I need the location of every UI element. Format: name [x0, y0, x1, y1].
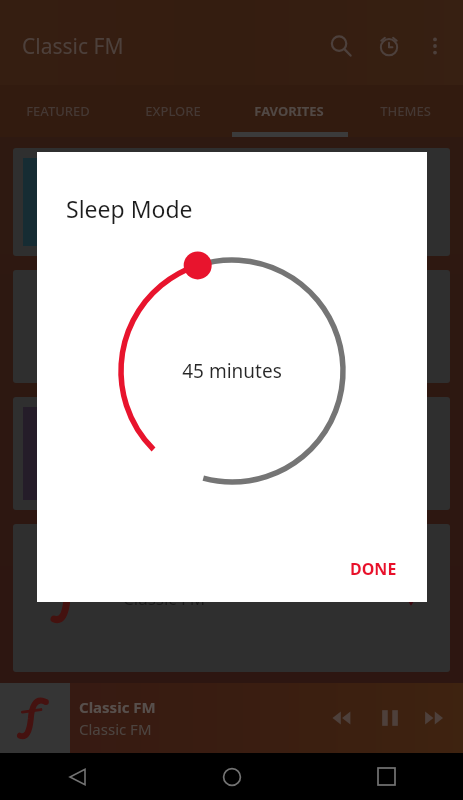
staticText: Classic FM	[22, 32, 124, 61]
button[interactable]: Pause	[367, 695, 413, 741]
staticText: EXPLORE	[145, 102, 201, 120]
staticText: 45 minutes	[182, 358, 282, 384]
button[interactable]: Next	[413, 695, 459, 741]
staticText: Sleep Mode	[66, 193, 193, 224]
button[interactable]: Recents	[309, 753, 463, 800]
staticText: FAVORITES	[254, 102, 324, 120]
staticText: DONE	[350, 558, 397, 580]
button[interactable]	[13, 270, 450, 383]
button[interactable]: EXPLORE	[115, 85, 231, 137]
button[interactable]: Search	[317, 22, 365, 70]
staticText: Classic FM	[123, 587, 206, 610]
staticText: Classic FM	[79, 697, 156, 717]
staticText: FEATURED	[26, 102, 90, 120]
button[interactable]: THEMES	[347, 85, 463, 137]
button[interactable]: Classic FM	[0, 683, 463, 753]
staticText: THEMES	[380, 102, 431, 120]
button[interactable]: Sleep timer	[365, 22, 413, 70]
button[interactable]: FEATURED	[0, 85, 115, 137]
button[interactable]: DONE	[336, 549, 411, 589]
button[interactable]: Back	[0, 753, 155, 800]
button[interactable]: Home	[155, 753, 309, 800]
staticText: Classic FM	[79, 719, 152, 739]
button[interactable]	[13, 397, 450, 510]
button[interactable]: FAVORITES	[231, 85, 347, 137]
button[interactable]: Classic FM	[13, 524, 450, 672]
button[interactable]: Previous	[321, 695, 367, 741]
button[interactable]	[13, 148, 450, 256]
button[interactable]: More options	[413, 24, 457, 68]
